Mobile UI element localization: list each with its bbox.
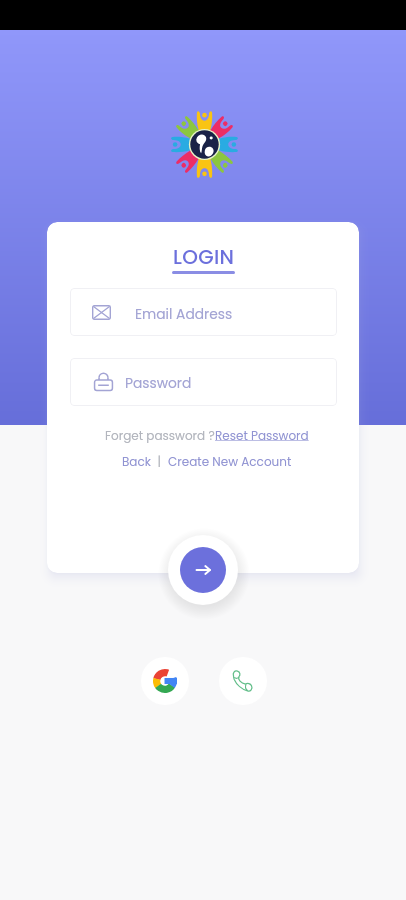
button[interactable]: Password [70,358,337,406]
staticText: Email Address [135,305,233,324]
button[interactable]: Back [122,453,151,470]
button[interactable]: Submit [180,547,226,593]
staticText: LOGIN [173,243,235,271]
button[interactable]: Create New Account [168,453,292,470]
button[interactable]: Email Address [70,288,337,336]
staticText: Forget password ? [105,427,215,444]
button[interactable]: Sign in with Google [141,657,189,705]
staticText: Password [125,374,192,393]
staticText: | [151,453,168,470]
button[interactable]: Reset Password [215,427,309,444]
button[interactable]: Sign in with phone [219,657,267,705]
